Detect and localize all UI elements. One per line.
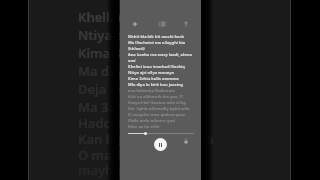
staticText: (khlaati) (128, 46, 145, 51)
staticText: Khellani n3ich bo (78, 8, 187, 26)
button[interactable]: Share (180, 18, 192, 30)
button[interactable]: Pause (154, 138, 167, 151)
staticText: Kbar aa lar n3iir (128, 124, 160, 129)
staticText: Mchit bla bik hit machi bach (128, 34, 185, 39)
staticText: Kima 3chta kalla ammara (128, 76, 179, 81)
staticText: Kima 3chti bghiti (78, 44, 186, 62)
staticText: Ntiya ajri n9ya wnnaya (128, 70, 174, 75)
button[interactable]: Queue (156, 18, 168, 30)
button[interactable]: Lyrics (129, 18, 141, 30)
staticText: Ana kanba ma wasy laadi, ahma (128, 52, 192, 57)
staticText: Dar 3ghik w3amadly bghit w9a (128, 106, 190, 111)
button[interactable]: Connect to a device (181, 136, 191, 146)
staticText: Dzayed bel 3awasa wila ol bg (128, 100, 186, 105)
staticText: Hadchi li bini o (78, 114, 172, 132)
staticText: bkit ou alkhatrik dra gaa, l7 (128, 94, 184, 99)
staticText: Kan bghitek magolha (78, 130, 214, 148)
staticText: mayhemni walo (78, 161, 180, 179)
staticText: Mla diya lu kirit kou jaacing (128, 82, 184, 87)
button[interactable]: Seek bar (128, 131, 194, 136)
staticText: ana habanba l9albmata (128, 88, 175, 93)
staticText: ana' (128, 58, 137, 63)
staticText: O mayhemnich (78, 146, 174, 164)
staticText: l9albi walo w3omrr god (128, 118, 175, 123)
staticText: Deja nsiti kolchi (78, 80, 179, 98)
staticText: O magelha maa qrabna gaaz (128, 112, 185, 117)
staticText: Ma l3achatni ma n3ayghi bia (128, 40, 186, 45)
staticText: Ma 3amrni nsit h (78, 98, 185, 116)
staticText: Ma dayra walou m (78, 62, 195, 80)
staticText: Khelini inou imarkad l3achiq (128, 64, 185, 69)
staticText: Ntiya arwah l3nd (78, 26, 187, 44)
